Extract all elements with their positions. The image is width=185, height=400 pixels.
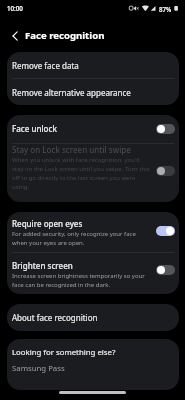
staticText: About face recognition: [12, 312, 98, 323]
button[interactable]: Require open eyes: [7, 212, 179, 252]
staticText: Remove alternative appearance: [12, 87, 131, 98]
button[interactable]: Remove alternative appearance: [7, 79, 179, 105]
staticText: Brighten screen: [12, 260, 73, 271]
button[interactable]: Off: [156, 166, 175, 176]
staticText: Remove face data: [12, 60, 79, 71]
staticText: Samsung Pass: [12, 363, 65, 374]
staticText: 87%: [159, 5, 172, 13]
staticText: When you unlock with face recognition, y…: [12, 156, 150, 190]
button[interactable]: Samsung Pass: [12, 363, 174, 374]
button[interactable]: Navigate up: [8, 29, 21, 42]
button[interactable]: Face unlock: [7, 115, 179, 143]
button[interactable]: About face recognition: [7, 304, 179, 331]
staticText: Increase screen brightness temporarily s…: [12, 272, 150, 288]
staticText: Looking for something else?: [12, 347, 116, 358]
staticText: 10:00: [7, 4, 23, 12]
staticText: Face unlock: [12, 123, 57, 134]
staticText: For added security, only recognize your …: [12, 230, 150, 246]
button[interactable]: Stay on Lock screen until swipe: [7, 144, 179, 202]
staticText: Require open eyes: [12, 218, 83, 229]
button[interactable]: Remove face data: [7, 52, 179, 78]
button[interactable]: Off: [156, 124, 175, 134]
button[interactable]: On: [156, 226, 175, 236]
staticText: Stay on Lock screen until swipe: [12, 144, 131, 155]
button[interactable]: Brighten screen: [7, 253, 179, 294]
staticText: Face recognition: [25, 29, 105, 42]
button[interactable]: Off: [156, 265, 175, 275]
